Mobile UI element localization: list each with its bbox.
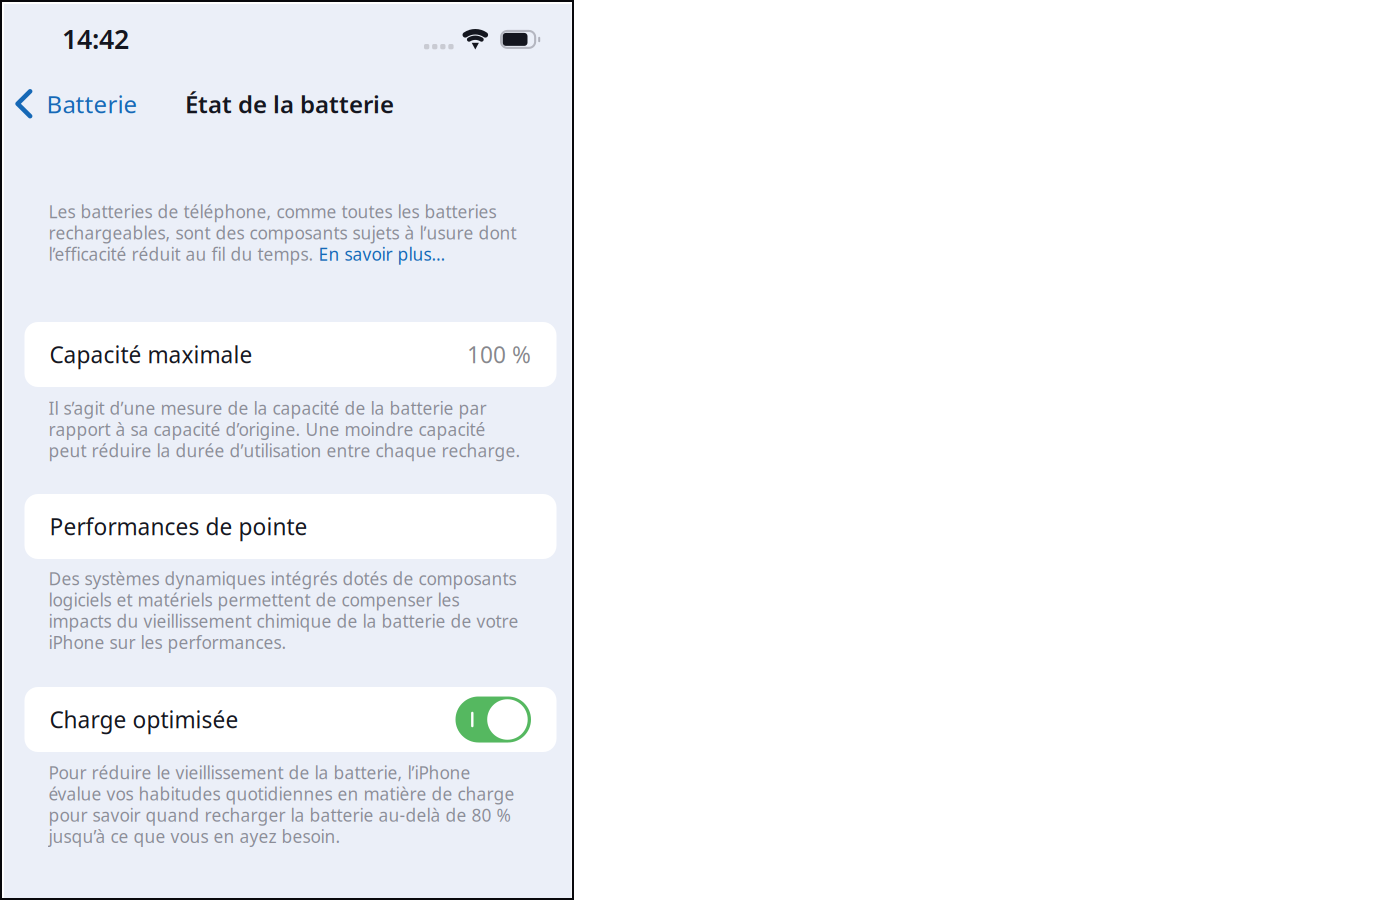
button[interactable]: Capacité maximale (24, 322, 556, 387)
button[interactable]: Batterie (4, 84, 164, 124)
staticText: 14:42 (62, 21, 129, 56)
button[interactable]: Performances de pointe (24, 494, 556, 559)
staticText: Pour réduire le vieillissement de la bat… (48, 761, 514, 848)
staticText: Il s’agit d’une mesure de la capacité de… (48, 396, 520, 462)
staticText: Batterie (46, 88, 137, 120)
staticText: Performances de pointe (49, 511, 307, 541)
button[interactable]: Charge optimisée (24, 687, 556, 752)
staticText: Les batteries de téléphone, comme toutes… (48, 200, 516, 265)
staticText: État de la batterie (185, 88, 394, 120)
button[interactable]: Charge optimisée (455, 696, 531, 742)
staticText: Charge optimisée (49, 704, 238, 734)
staticText: Des systèmes dynamiques intégrés dotés d… (48, 567, 518, 654)
staticText: 100 % (467, 339, 531, 369)
staticText: Capacité maximale (49, 339, 252, 369)
